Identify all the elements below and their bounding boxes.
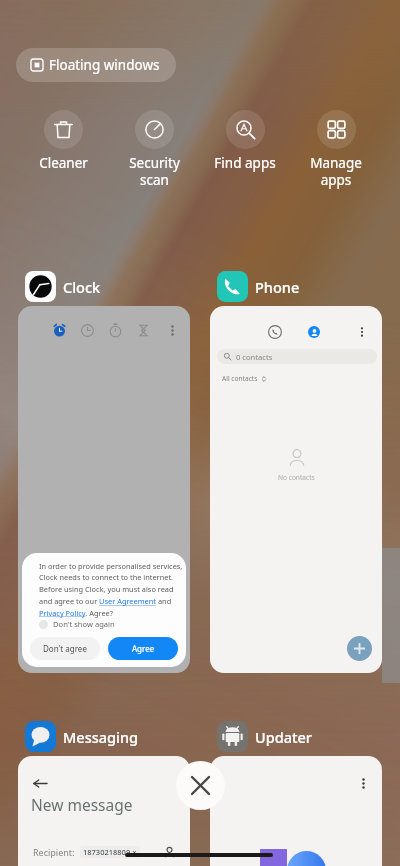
- button[interactable]: All contacts: [222, 374, 267, 383]
- button[interactable]: Find apps: [200, 110, 290, 172]
- staticText: Phone: [255, 277, 300, 297]
- button[interactable]: Manage apps: [291, 110, 381, 189]
- staticText: Floating windows: [49, 56, 160, 74]
- button[interactable]: Clock: [25, 271, 101, 302]
- button[interactable]: Recent calls: [210, 306, 382, 673]
- staticText: In order to provide personalised service…: [39, 561, 184, 618]
- button[interactable]: More options: [355, 325, 369, 339]
- staticText: Find apps: [214, 154, 276, 172]
- staticText: No contacts: [278, 473, 315, 482]
- button[interactable]: Close all: [176, 761, 225, 810]
- button[interactable]: [210, 756, 382, 866]
- button[interactable]: Don't agree: [30, 637, 100, 660]
- staticText: New message: [31, 794, 133, 815]
- staticText: Don't show again: [53, 619, 115, 629]
- button[interactable]: 0 contacts: [217, 349, 377, 364]
- button[interactable]: Messaging: [25, 721, 139, 752]
- staticText: Cleaner: [39, 154, 88, 172]
- button[interactable]: Floating windows: [16, 48, 176, 82]
- staticText: Manage apps: [310, 154, 362, 189]
- staticText: Agree: [132, 643, 155, 654]
- staticText: 18730218809 ×: [83, 847, 137, 857]
- staticText: 0 contacts: [236, 352, 273, 362]
- button[interactable]: New message: [18, 756, 190, 866]
- button[interactable]: Cleaner: [18, 110, 108, 172]
- button[interactable]: Agree: [108, 637, 178, 660]
- staticText: Security scan: [129, 154, 180, 189]
- button[interactable]: Security scan: [109, 110, 199, 189]
- staticText: Don't agree: [43, 643, 87, 654]
- staticText: All contacts: [222, 374, 258, 383]
- staticText: Clock: [63, 277, 101, 297]
- button[interactable]: In order to provide personalised service…: [18, 306, 190, 673]
- button[interactable]: Recent calls: [267, 324, 283, 340]
- staticText: Recipient:: [33, 846, 75, 858]
- button[interactable]: Add contact: [347, 636, 372, 661]
- button[interactable]: Contacts: [308, 326, 320, 338]
- button[interactable]: Updater: [217, 721, 312, 752]
- staticText: Updater: [255, 727, 312, 747]
- staticText: Messaging: [63, 727, 139, 747]
- button[interactable]: Phone: [217, 271, 300, 302]
